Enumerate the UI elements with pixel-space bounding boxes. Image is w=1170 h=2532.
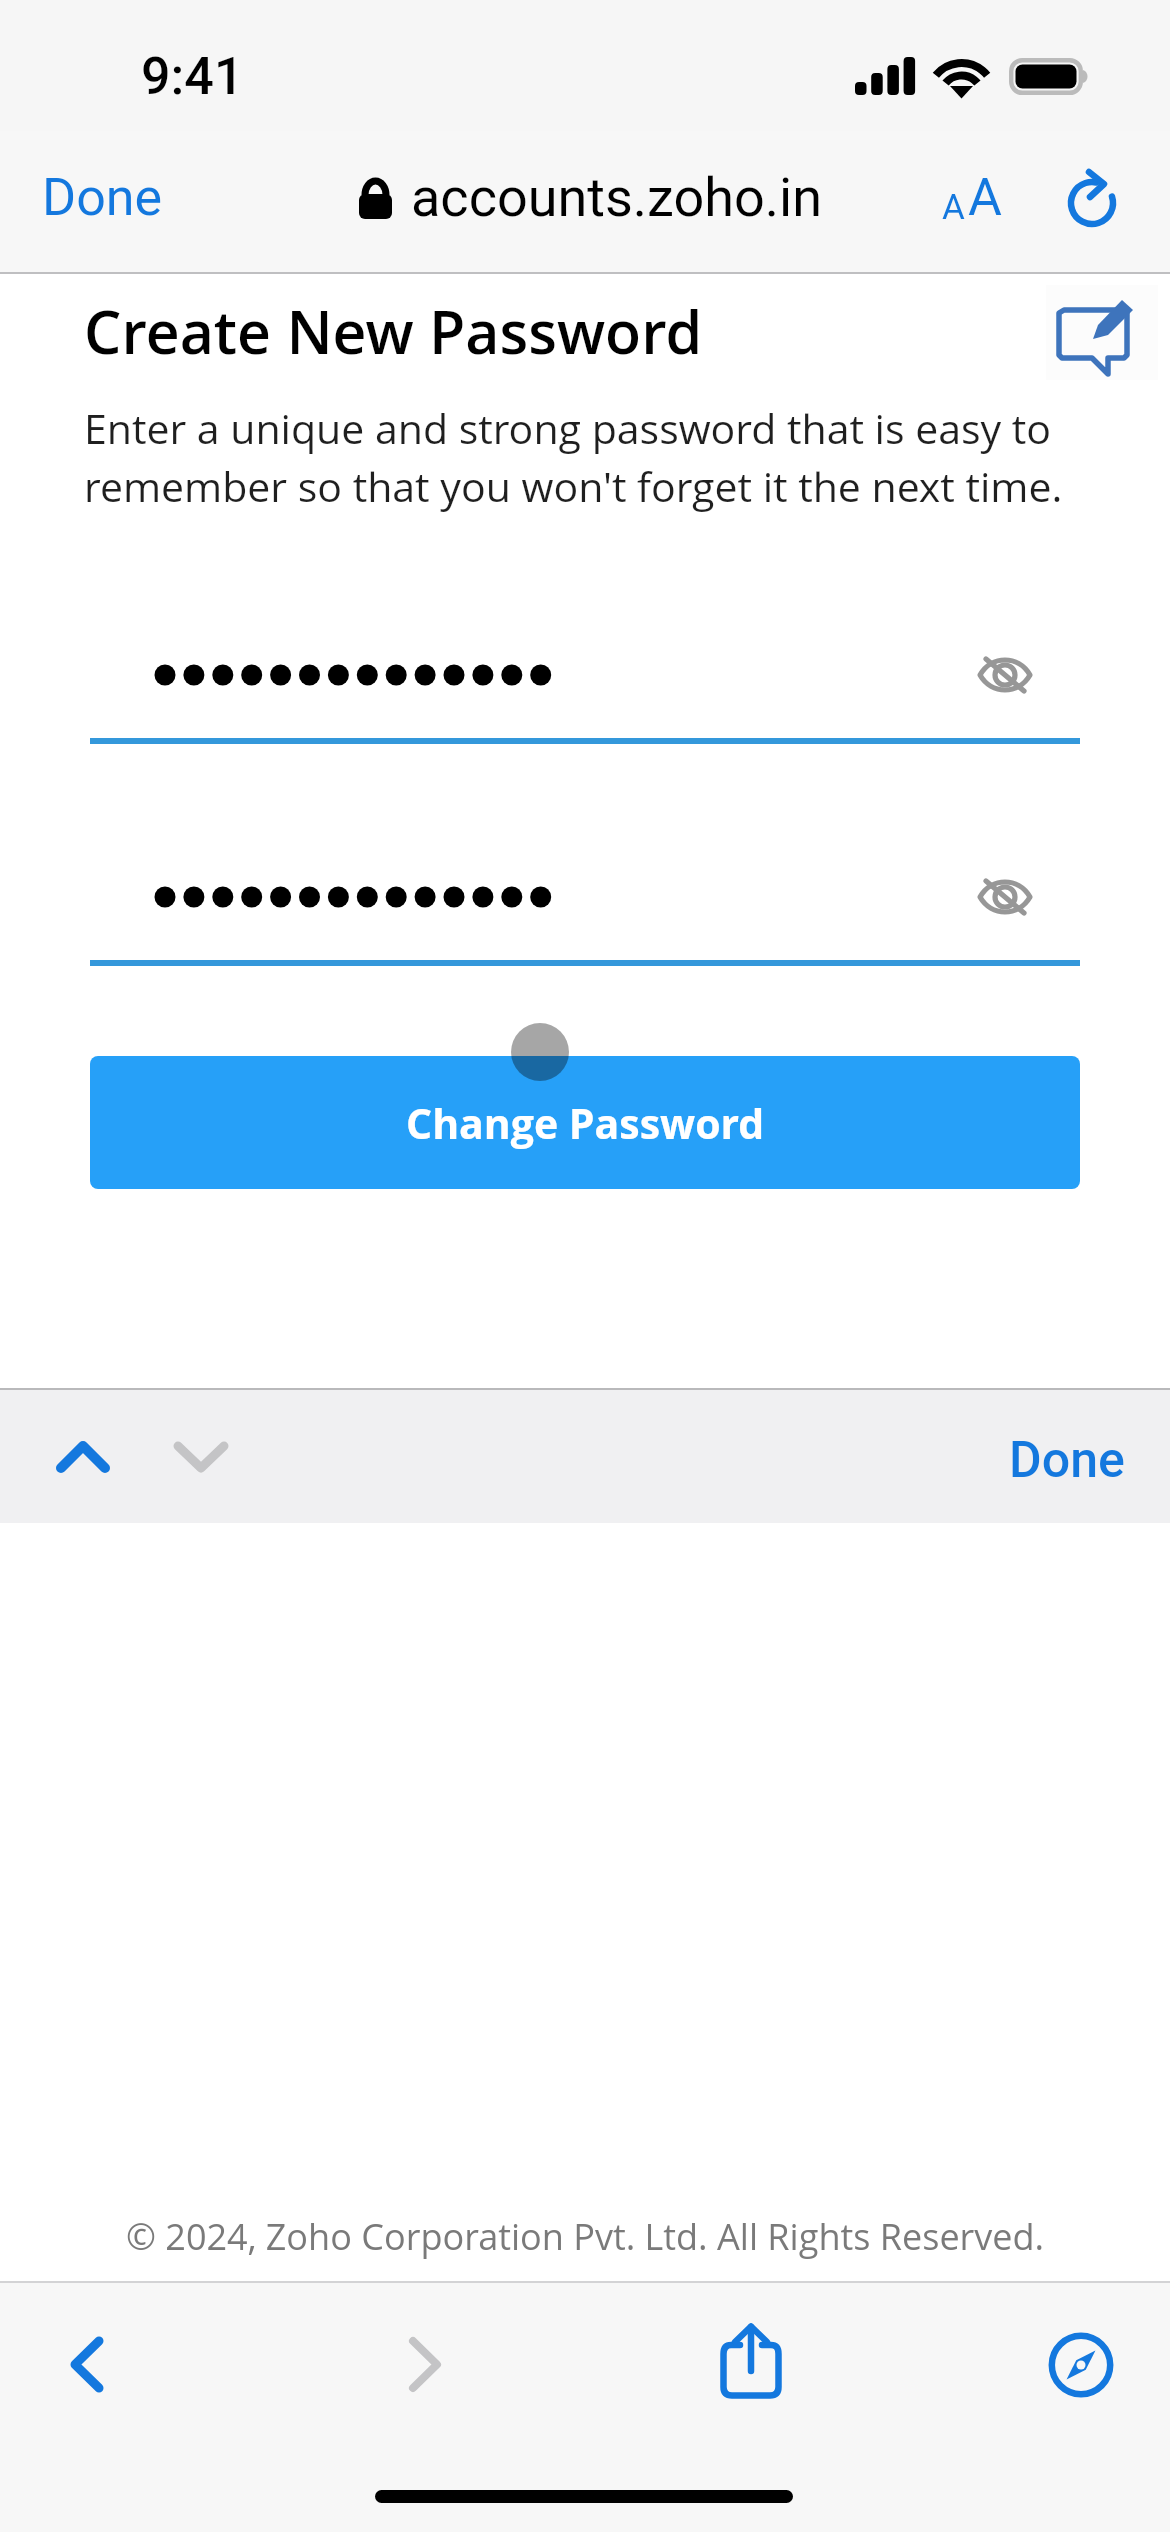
button[interactable]: Change Password — [90, 1056, 1080, 1189]
button[interactable]: Previous field — [36, 1421, 130, 1493]
button[interactable]: Show password — [971, 641, 1039, 709]
button[interactable]: Done — [977, 1409, 1157, 1512]
button[interactable]: Done — [2, 145, 203, 250]
button[interactable]: Share — [711, 2321, 791, 2401]
button[interactable]: Feedback — [1046, 285, 1158, 380]
staticText: © 2024, Zoho Corporation Pvt. Ltd. All R… — [126, 2212, 1045, 2261]
staticText: A — [968, 167, 1002, 228]
staticText: Enter a unique and strong password that … — [84, 400, 1089, 514]
button[interactable]: Tabs — [1041, 2325, 1121, 2405]
staticText: accounts.zoho.in — [411, 166, 822, 229]
button[interactable]: Back — [51, 2329, 122, 2400]
button[interactable]: Forward — [389, 2329, 460, 2400]
button[interactable]: Text size options — [928, 147, 1016, 248]
staticText: Done — [42, 167, 163, 228]
button[interactable]: accounts.zoho.in — [359, 150, 822, 245]
staticText: 9:41 — [141, 46, 244, 107]
button[interactable]: Show password — [971, 863, 1039, 931]
staticText: Create New Password — [84, 291, 703, 371]
button[interactable]: Reload page — [1052, 159, 1130, 237]
button[interactable]: Next field — [153, 1421, 249, 1493]
staticText: A — [942, 187, 965, 228]
staticText: Change Password — [406, 1095, 765, 1151]
staticText: Done — [1009, 1431, 1125, 1490]
